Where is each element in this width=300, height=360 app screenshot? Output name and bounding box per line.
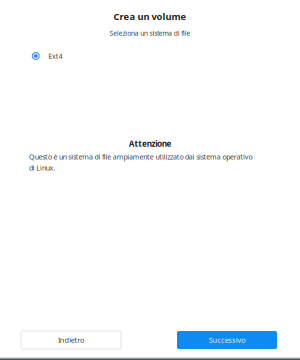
- staticText: Successivo: [209, 335, 245, 345]
- staticText: Ext4: [48, 51, 62, 61]
- button[interactable]: Successivo: [177, 331, 277, 349]
- staticText: Attenzione: [129, 138, 171, 149]
- staticText: Seleziona un sistema di file: [109, 29, 191, 38]
- staticText: Crea un volume: [113, 10, 186, 23]
- button[interactable]: Indietro: [21, 331, 121, 349]
- staticText: Indietro: [58, 335, 84, 345]
- staticText: Questo è un sistema di file ampiamente u…: [29, 152, 253, 173]
- button[interactable]: Ext4: [0, 48, 300, 64]
